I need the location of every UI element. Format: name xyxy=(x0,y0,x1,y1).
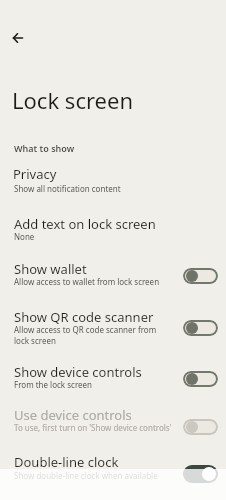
button[interactable] xyxy=(183,371,218,387)
staticText: Privacy xyxy=(13,165,57,183)
staticText: Show wallet xyxy=(14,260,87,278)
staticText: Add text on lock screen xyxy=(14,215,156,233)
staticText: To use, first turn on 'Show device contr… xyxy=(14,422,172,433)
button[interactable]: Show QR code scanner xyxy=(0,300,226,355)
button[interactable] xyxy=(183,268,218,284)
staticText: Use device controls xyxy=(14,406,132,424)
button[interactable] xyxy=(4,24,32,52)
button[interactable]: Add text on lock screen xyxy=(0,207,226,251)
staticText: Allow access to QR code scanner from loc… xyxy=(14,324,157,347)
staticText: Show QR code scanner xyxy=(14,308,154,326)
staticText: Show double-line clock when available xyxy=(14,470,158,481)
button[interactable] xyxy=(183,465,218,483)
staticText: None xyxy=(14,231,35,242)
staticText: From the lock screen xyxy=(14,379,92,390)
staticText: What to show xyxy=(14,142,75,154)
staticText: Lock screen xyxy=(12,85,134,115)
staticText: Show all notification content xyxy=(14,183,121,194)
staticText: Allow access to wallet from lock screen xyxy=(14,276,160,287)
button[interactable]: Privacy xyxy=(0,159,226,201)
button[interactable] xyxy=(183,320,218,336)
button[interactable] xyxy=(183,419,218,435)
button[interactable]: Use device controls xyxy=(0,400,226,444)
button[interactable]: Show wallet xyxy=(0,252,226,298)
button[interactable]: Show device controls xyxy=(0,355,226,399)
staticText: Show device controls xyxy=(14,363,142,381)
button[interactable]: Double-line clock xyxy=(0,446,226,500)
staticText: Double-line clock xyxy=(14,453,119,471)
